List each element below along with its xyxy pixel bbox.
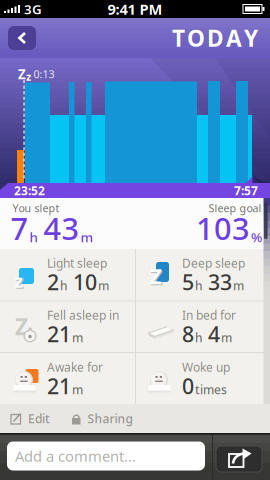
staticText: In bed for [182,307,236,323]
staticText: 5 [182,268,194,296]
staticText: 7:57 [234,182,258,198]
staticText: 23:52 [14,182,45,198]
staticText: % [251,228,262,246]
staticText: Sharing [87,410,132,426]
staticText: times [195,382,227,398]
button[interactable] [8,26,36,50]
staticText: Woke up [182,359,230,375]
staticText: Awake for [47,359,103,375]
staticText: 2 [47,268,59,296]
staticText: 21 [47,320,71,348]
staticText: z [15,270,24,293]
staticText: Sleep goal [208,201,261,215]
staticText: m [72,330,83,346]
staticText: 3G [24,0,42,18]
button[interactable] [216,446,262,472]
staticText: m [233,278,244,294]
staticText: T O D A Y [172,23,258,53]
staticText: You slept [12,201,59,215]
staticText: Edit [28,410,50,426]
button[interactable]: Edit [8,404,52,433]
staticText: h [60,278,68,294]
staticText: 10 [69,268,97,296]
staticText: 33 [204,268,232,296]
staticText: Add a comment... [15,446,136,466]
staticText: z [14,269,23,292]
staticText: m [72,382,83,398]
staticText: 4 [204,320,220,348]
staticText: 0:13 [33,67,54,81]
staticText: Z [149,262,161,290]
staticText: Z [15,311,28,341]
staticText: m [80,228,93,246]
staticText: Z [150,263,162,291]
button[interactable]: Add a comment... [7,441,205,470]
staticText: h [29,228,37,246]
staticText: 21 [47,372,71,400]
staticText: 8 [182,320,194,348]
staticText: Light sleep [47,255,107,271]
staticText: 103 [196,208,250,248]
staticText: Z [18,65,26,83]
staticText: m [98,278,109,294]
button[interactable]: Sharing [66,404,136,433]
staticText: 0 [182,372,194,400]
staticText: 43 [38,208,79,248]
staticText: m [221,330,232,346]
staticText: h [195,330,203,346]
staticText: Deep sleep [182,255,245,271]
staticText: h [195,278,203,294]
staticText: z [26,69,31,84]
staticText: 7 [10,208,28,248]
staticText: 9:41 PM [107,0,162,19]
staticText: Fell asleep in [47,307,119,323]
